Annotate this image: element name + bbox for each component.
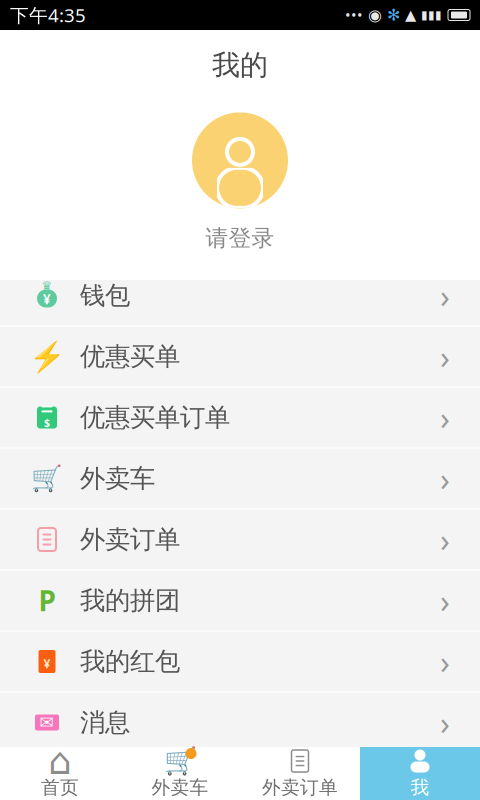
staticText: 外卖订单 [262, 776, 338, 799]
staticText: 请登录 [205, 224, 274, 252]
staticText: 外卖车 [151, 776, 208, 799]
button[interactable]: 🛒 [0, 448, 480, 509]
staticText: 钱包 [80, 280, 130, 311]
button[interactable]: ✉ [0, 692, 480, 753]
button[interactable]: ♛ [0, 265, 480, 326]
staticText: 🛒 [31, 464, 63, 493]
staticText: ✻ [387, 6, 400, 24]
staticText: ▲ [400, 7, 421, 23]
staticText: ◉ [363, 6, 387, 24]
staticText: 我的拼团 [80, 585, 180, 616]
staticText: P [38, 582, 55, 619]
staticText: 我的红包 [80, 646, 180, 677]
button[interactable]: P [0, 570, 480, 631]
button[interactable]: ⌂ [0, 747, 120, 800]
staticText: 我的 [212, 48, 268, 82]
staticText: ••• [345, 5, 363, 25]
staticText: › [440, 396, 450, 439]
button[interactable]: 我 [360, 747, 480, 800]
button[interactable]: 外卖订单 [240, 747, 360, 800]
staticText: › [440, 518, 450, 561]
staticText: $ [44, 415, 50, 430]
staticText: ✉ [39, 713, 54, 732]
staticText: 🛒 [163, 746, 196, 776]
staticText: 外卖订单 [80, 524, 180, 555]
staticText: ⌂ [48, 740, 72, 782]
staticText: 我 [410, 776, 429, 799]
staticText: 首页 [41, 776, 79, 799]
staticText: 优惠买单订单 [80, 402, 230, 433]
staticText: 外卖车 [80, 463, 155, 494]
staticText: 优惠买单 [80, 341, 180, 372]
staticText: › [440, 579, 450, 622]
staticText: › [440, 335, 450, 378]
button[interactable]: ¥ [0, 631, 480, 692]
staticText: 下午4:35 [10, 3, 86, 27]
staticText: 消息 [80, 707, 130, 738]
staticText: › [440, 457, 450, 500]
staticText: ¥ [43, 290, 51, 308]
staticText: ♛ [41, 279, 52, 292]
button[interactable]: 🛒 [120, 747, 240, 800]
staticText: › [440, 701, 450, 744]
button[interactable]: $ [0, 387, 480, 448]
button[interactable]: 外卖订单 [0, 509, 480, 570]
staticText: › [440, 274, 450, 317]
staticText: ¥ [43, 655, 50, 671]
staticText: ▮▮▮ [421, 8, 442, 22]
staticText: ⚡ [28, 340, 65, 373]
button[interactable]: ⚡ [0, 326, 480, 387]
staticText: › [440, 640, 450, 683]
